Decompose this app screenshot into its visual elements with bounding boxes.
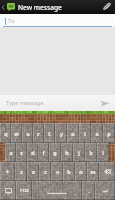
button[interactable]: Navigate up — [0, 0, 18, 14]
staticText: b — [67, 168, 71, 175]
button[interactable]: q — [0, 123, 11, 143]
button[interactable]: r — [33, 123, 44, 143]
staticText: y — [60, 130, 63, 137]
button[interactable]: ?123 — [16, 181, 32, 200]
button[interactable]: j — [73, 143, 85, 162]
button[interactable]: Delete — [99, 162, 115, 181]
button[interactable]: z — [15, 162, 27, 181]
staticText: h — [65, 149, 69, 156]
button[interactable]: s — [16, 143, 27, 162]
button[interactable]: i — [79, 123, 91, 143]
button[interactable]: Type message — [0, 95, 95, 111]
staticText: t — [48, 130, 51, 137]
button[interactable]: h — [61, 143, 73, 162]
staticText: n — [79, 168, 83, 175]
staticText: q — [4, 130, 8, 137]
button[interactable]: . — [82, 181, 95, 200]
staticText: To — [8, 17, 15, 25]
button[interactable]: k — [85, 143, 97, 162]
button[interactable]: Attach — [99, 0, 115, 14]
button[interactable]: t — [44, 123, 55, 143]
staticText: u — [71, 130, 75, 137]
button[interactable]: d — [27, 143, 38, 162]
staticText: New message — [18, 3, 99, 12]
staticText: l — [102, 149, 104, 156]
staticText: m — [90, 168, 96, 175]
button[interactable]: To — [0, 14, 115, 27]
button[interactable]: u — [67, 123, 79, 143]
button[interactable]: Space — [32, 181, 82, 200]
button[interactable]: Switch keyboard — [0, 181, 16, 200]
staticText: a — [9, 149, 13, 156]
button[interactable]: Send — [95, 95, 115, 111]
staticText: p — [107, 130, 111, 137]
staticText: v — [56, 168, 59, 175]
button[interactable]: w — [11, 123, 22, 143]
button[interactable]: Shift — [0, 162, 15, 181]
button[interactable]: l — [97, 143, 109, 162]
staticText: j — [78, 149, 80, 156]
button[interactable]: x — [27, 162, 39, 181]
staticText: o — [95, 130, 99, 137]
button[interactable]: c — [39, 162, 51, 181]
staticText: k — [89, 149, 93, 156]
button[interactable]: a — [5, 143, 16, 162]
button[interactable]: e — [22, 123, 33, 143]
button[interactable]: b — [63, 162, 75, 181]
button[interactable]: y — [55, 123, 67, 143]
staticText: s — [20, 149, 23, 156]
staticText: i — [84, 130, 86, 137]
button[interactable]: Enter — [95, 181, 115, 200]
staticText: e — [26, 130, 30, 137]
staticText: x — [32, 168, 35, 175]
button[interactable]: n — [75, 162, 87, 181]
staticText: Type message — [6, 99, 44, 107]
staticText: d — [31, 149, 35, 156]
staticText: z — [20, 168, 23, 175]
staticText: g — [53, 149, 57, 156]
staticText: . — [88, 187, 90, 194]
button[interactable]: m — [87, 162, 99, 181]
button[interactable]: g — [49, 143, 61, 162]
button[interactable]: v — [51, 162, 63, 181]
staticText: f — [42, 149, 45, 156]
button[interactable]: p — [103, 123, 115, 143]
staticText: c — [44, 168, 47, 175]
staticText: ?123 — [20, 188, 29, 193]
button[interactable]: o — [91, 123, 103, 143]
button[interactable]: f — [38, 143, 49, 162]
staticText: w — [14, 130, 19, 137]
staticText: r — [37, 130, 40, 137]
